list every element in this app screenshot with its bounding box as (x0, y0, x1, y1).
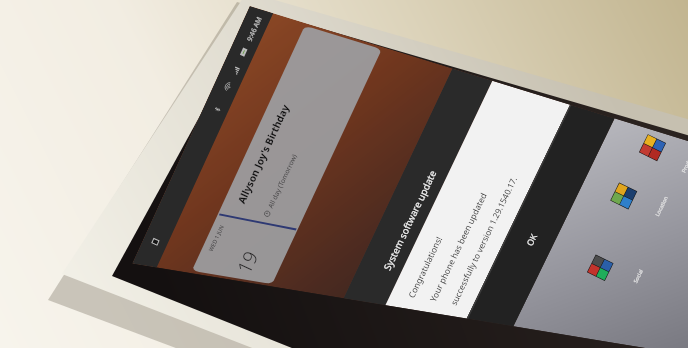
button[interactable]: Phone showing a system software update d… (0, 0, 688, 348)
